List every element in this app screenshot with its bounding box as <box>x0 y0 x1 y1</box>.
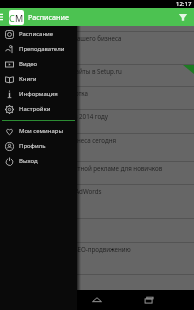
staticText: C <box>9 12 15 24</box>
button[interactable]: Интернет-реклама для вашего бизнеса <box>0 32 194 65</box>
staticText: Казань <box>3 146 18 152</box>
staticText: Видео <box>19 60 38 68</box>
button[interactable]: Полный курс по Google AdWords <box>0 185 194 219</box>
staticText: 12:17 <box>176 0 192 8</box>
button[interactable]: Информация <box>0 86 77 101</box>
button[interactable]: Комплексный подход к SEO-продвижению <box>0 243 194 275</box>
staticText: Настройки <box>19 105 51 113</box>
staticText: 25 <box>5 107 10 110</box>
staticText: 200 <box>4 154 12 160</box>
staticText: Санкт-Петербург <box>3 44 37 50</box>
staticText: 39 <box>5 130 10 134</box>
staticText: Мои семинары <box>19 127 64 135</box>
button[interactable]: Open navigation drawer <box>0 10 3 24</box>
button[interactable]: Базовый курс по контекстной рекламе для … <box>0 162 194 185</box>
staticText: Интернет-реклама для вашего бизнеса <box>3 34 122 42</box>
button[interactable]: Видео <box>0 56 77 71</box>
staticText: Расписание <box>19 30 54 38</box>
button[interactable]: Преподаватели <box>0 41 77 56</box>
staticText: M <box>15 12 24 24</box>
button[interactable]: Настройки <box>0 101 77 116</box>
staticText: Новый метод для заработка <box>3 89 88 97</box>
staticText: Учимся быстро делать сайты в Setup.ru <box>3 67 122 75</box>
button[interactable]: Home <box>90 293 104 307</box>
staticText: Полный курс по Google AdWords <box>3 187 102 195</box>
button[interactable]: Recents <box>142 293 156 307</box>
button[interactable]: Filter <box>177 11 189 23</box>
button[interactable]: Расписание <box>0 26 77 41</box>
staticText: Работаем с CPA сетями в 2014 году <box>3 112 109 120</box>
staticText: Базовый курс по контекстной рекламе для … <box>3 164 163 172</box>
staticText: Расписание <box>28 12 69 22</box>
staticText: Профиль <box>19 142 46 150</box>
staticText: Реклама для малого бизнеса сегодня <box>3 136 117 144</box>
staticText: Москва <box>3 77 19 83</box>
button[interactable]: Книги <box>0 71 77 86</box>
staticText: Выход <box>19 157 38 165</box>
staticText: Книги <box>19 75 37 83</box>
staticText: Информация <box>19 90 58 98</box>
button[interactable]: Реклама для малого бизнеса сегодня <box>0 134 194 162</box>
button[interactable]: Работаем с CPA сетями в 2014 году <box>0 110 194 134</box>
staticText: Комплексный подход к SEO-продвижению <box>3 245 131 253</box>
button[interactable]: Введение в SEO <box>0 219 194 243</box>
button[interactable] <box>0 26 194 32</box>
button[interactable]: Мои семинары <box>0 123 77 138</box>
button[interactable]: Новый метод для заработка <box>0 87 194 110</box>
button[interactable]: Учимся быстро делать сайты в Setup.ru <box>0 65 194 87</box>
button[interactable]: Профиль <box>0 138 77 153</box>
button[interactable]: Выход <box>0 153 77 168</box>
staticText: Преподаватели <box>19 45 65 53</box>
